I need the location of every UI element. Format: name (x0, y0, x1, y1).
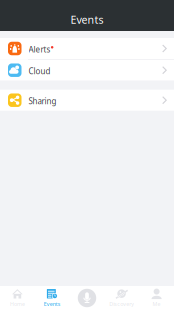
staticText: Events (70, 12, 103, 27)
staticText: Discovery (109, 300, 134, 308)
button[interactable]: Events (35, 286, 70, 310)
staticText: Sharing (28, 96, 56, 106)
staticText: Events (44, 300, 61, 308)
button[interactable]: Cloud (0, 60, 174, 81)
button[interactable]: Sharing (0, 90, 174, 111)
button[interactable]: Me (139, 286, 174, 310)
staticText: Cloud (28, 66, 50, 76)
staticText: Me (153, 300, 161, 308)
button[interactable]: Alerts (0, 38, 174, 59)
button[interactable]: Home (0, 286, 35, 310)
button[interactable]: Record (70, 286, 104, 310)
staticText: Alerts (28, 44, 50, 55)
button[interactable]: Discovery (104, 286, 139, 310)
staticText: Home (10, 300, 25, 308)
